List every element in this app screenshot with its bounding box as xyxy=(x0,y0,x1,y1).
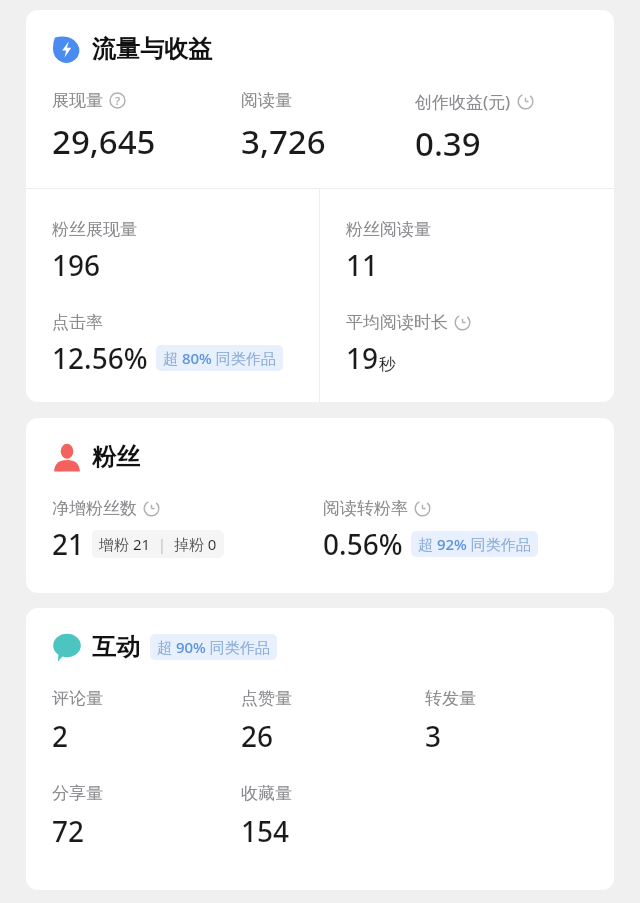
other: 延迟更新 xyxy=(414,500,431,517)
staticText: 收藏量 xyxy=(241,783,292,804)
staticText: 超 92% 同类作品 xyxy=(418,534,531,554)
staticText: 粉丝展现量 xyxy=(52,219,137,240)
staticText: 2 xyxy=(52,717,69,755)
other: 延迟更新 xyxy=(143,500,160,517)
staticText: 196 xyxy=(52,246,101,284)
staticText: 3,726 xyxy=(241,119,326,164)
other: 说明 xyxy=(109,92,126,109)
staticText: 阅读转粉率 xyxy=(323,498,408,519)
other: 延迟更新 xyxy=(454,314,471,331)
staticText: 21 xyxy=(52,525,85,563)
staticText: 粉丝 xyxy=(92,442,140,472)
staticText: 0.56% xyxy=(323,525,403,563)
button[interactable]: 超 90% 同类作品 xyxy=(150,634,277,660)
staticText: 0.39 xyxy=(415,121,481,166)
staticText: 评论量 xyxy=(52,688,103,709)
staticText: 粉丝阅读量 xyxy=(346,219,431,240)
staticText: 点赞量 xyxy=(241,688,292,709)
staticText: 秒 xyxy=(379,354,396,375)
staticText: 154 xyxy=(241,812,290,850)
button[interactable]: 超 80% 同类作品 xyxy=(156,345,283,371)
staticText: 流量与收益 xyxy=(92,34,212,64)
staticText: 超 80% 同类作品 xyxy=(163,348,276,368)
staticText: 阅读量 xyxy=(241,90,292,111)
staticText: 分享量 xyxy=(52,783,103,804)
staticText: 转发量 xyxy=(425,688,476,709)
staticText: 29,645 xyxy=(52,119,156,164)
staticText: 19 xyxy=(346,339,379,377)
staticText: 12.56% xyxy=(52,339,148,377)
staticText: 增粉 21 | 掉粉 0 xyxy=(99,534,217,554)
staticText: 创作收益(元) xyxy=(415,90,511,113)
button[interactable]: 超 92% 同类作品 xyxy=(411,531,538,557)
staticText: 11 xyxy=(346,246,379,284)
staticText: 互动 xyxy=(92,632,140,662)
button[interactable]: 增粉 21 | 掉粉 0 xyxy=(92,530,224,558)
staticText: 72 xyxy=(52,812,85,850)
staticText: 3 xyxy=(425,717,442,755)
staticText: 26 xyxy=(241,717,274,755)
staticText: ? xyxy=(115,93,121,109)
staticText: 净增粉丝数 xyxy=(52,498,137,519)
staticText: 超 90% 同类作品 xyxy=(157,637,270,657)
staticText: 平均阅读时长 xyxy=(346,312,448,333)
staticText: 点击率 xyxy=(52,312,103,333)
other: 延迟更新 xyxy=(517,93,534,110)
staticText: 展现量 xyxy=(52,90,103,111)
